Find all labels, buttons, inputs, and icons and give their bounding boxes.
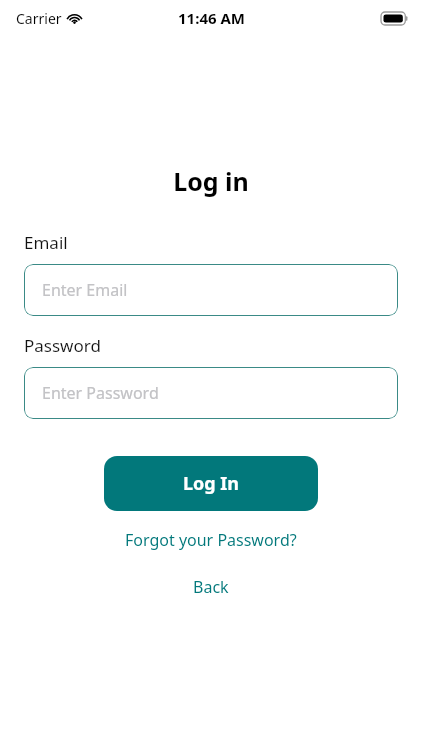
staticText: Enter Email — [42, 279, 128, 301]
staticText: Password — [24, 334, 101, 357]
staticText: Log In — [183, 471, 240, 496]
button[interactable]: Back — [179, 574, 243, 600]
staticText: Forgot your Password? — [125, 529, 297, 551]
staticText: Enter Password — [42, 382, 159, 404]
button[interactable]: Enter Email — [24, 264, 398, 316]
staticText: Log in — [0, 164, 422, 198]
staticText: 11:46 AM — [178, 8, 245, 28]
button[interactable]: Forgot your Password? — [115, 527, 307, 553]
button[interactable]: Log In — [104, 456, 318, 511]
staticText: Carrier — [16, 9, 62, 28]
button[interactable]: Enter Password — [24, 367, 398, 419]
staticText: Email — [24, 231, 68, 254]
staticText: Back — [193, 576, 229, 598]
